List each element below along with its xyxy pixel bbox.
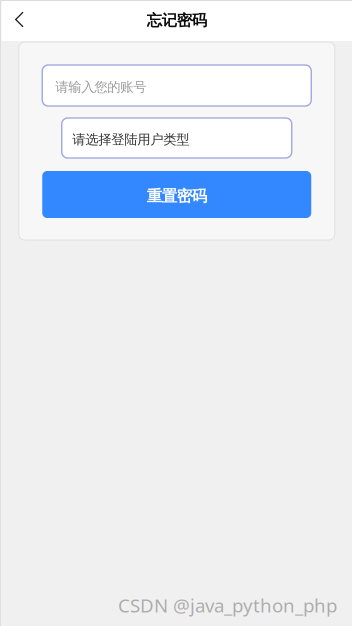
staticText: 重置密码	[147, 186, 207, 206]
button[interactable]: Back	[1, 0, 45, 40]
button[interactable]: 请选择登陆用户类型	[62, 118, 292, 158]
staticText: 忘记密码	[147, 11, 207, 30]
staticText: 请选择登陆用户类型	[72, 131, 189, 148]
button[interactable]: 重置密码	[42, 171, 311, 218]
button[interactable]: 请输入您的账号	[42, 65, 311, 106]
staticText: CSDN @java_python_php	[118, 593, 337, 618]
staticText: 请输入您的账号	[55, 79, 146, 95]
